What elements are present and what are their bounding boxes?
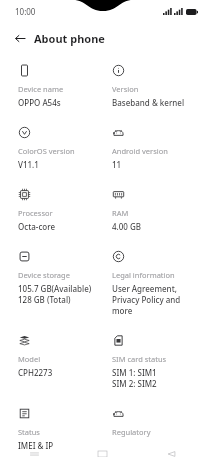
button[interactable]: Back xyxy=(11,29,29,47)
staticText: CPH2273 xyxy=(18,367,53,378)
staticText: 105.7 GB(Available) xyxy=(18,283,92,294)
other: Device name xyxy=(18,64,31,77)
staticText: Regulatory xyxy=(112,427,151,437)
other: Legal information xyxy=(112,250,125,263)
staticText: 4.00 GB xyxy=(112,221,142,232)
staticText: 10:00 xyxy=(15,6,36,17)
staticText: About phone xyxy=(34,31,105,46)
staticText: SIM 2: SIM2 xyxy=(112,378,157,389)
staticText: User Agreement, xyxy=(112,283,177,294)
staticText: Processor xyxy=(18,208,53,218)
other: Processor xyxy=(18,188,31,201)
button[interactable]: Android version xyxy=(112,124,198,170)
staticText: OPPO A54s xyxy=(18,97,61,108)
button[interactable]: SIM card status xyxy=(112,332,198,389)
staticText: Model xyxy=(18,354,41,364)
button[interactable]: Version xyxy=(112,62,198,108)
button[interactable]: Status xyxy=(18,405,112,451)
staticText: Legal information xyxy=(112,270,175,280)
button[interactable]: ColorOS version xyxy=(18,124,112,170)
staticText: ColorOS version xyxy=(18,146,75,156)
other: SIM card status xyxy=(112,334,125,347)
button[interactable]: Device storage xyxy=(18,248,112,305)
staticText: Android version xyxy=(112,146,168,156)
staticText: RAM xyxy=(112,208,129,218)
staticText: 128 GB (Total) xyxy=(18,294,71,305)
staticText: Device storage xyxy=(18,270,70,280)
staticText: more xyxy=(112,305,133,316)
other: Status xyxy=(18,407,31,420)
other: ColorOS version xyxy=(18,126,31,139)
staticText: 11 xyxy=(112,159,122,170)
staticText: V11.1 xyxy=(18,159,39,170)
button[interactable]: Processor xyxy=(18,186,112,232)
staticText: Privacy Policy and xyxy=(112,294,181,305)
staticText: Version xyxy=(112,84,139,94)
other: Regulatory xyxy=(112,407,125,420)
button[interactable]: RAM xyxy=(112,186,198,232)
staticText: SIM 1: SIM1 xyxy=(112,367,157,378)
button[interactable]: Regulatory xyxy=(112,405,198,440)
other: Android version xyxy=(112,126,125,139)
button[interactable]: Recents xyxy=(0,451,68,457)
staticText: Status xyxy=(18,427,40,437)
button[interactable]: Model xyxy=(18,332,112,378)
button[interactable]: Home xyxy=(68,451,137,457)
staticText: SIM card status xyxy=(112,354,167,364)
other: RAM xyxy=(112,188,125,201)
staticText: IMEI & IP xyxy=(18,440,54,451)
other: Device storage xyxy=(18,250,31,263)
staticText: Device name xyxy=(18,84,64,94)
button[interactable]: Legal information xyxy=(112,248,198,316)
button[interactable]: Device name xyxy=(18,62,112,108)
other: Version xyxy=(112,64,125,77)
staticText: Octa-core xyxy=(18,221,56,232)
staticText: Baseband & kernel xyxy=(112,97,185,108)
button[interactable]: Back xyxy=(137,451,206,457)
other: Model xyxy=(18,334,31,347)
